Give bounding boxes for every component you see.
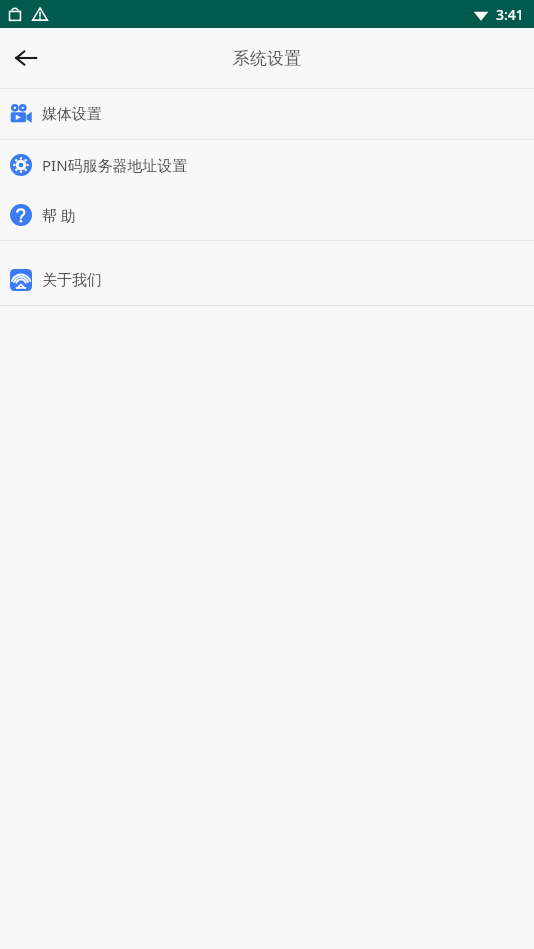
- staticText: 关于我们: [42, 271, 102, 290]
- staticText: PIN码服务器地址设置: [42, 155, 188, 175]
- button[interactable]: 关于我们: [0, 255, 534, 305]
- staticText: 3:41: [496, 5, 524, 24]
- button[interactable]: 媒体设置: [0, 89, 534, 139]
- button[interactable]: Back: [0, 32, 52, 84]
- staticText: 系统设置: [233, 48, 301, 69]
- staticText: 媒体设置: [42, 105, 102, 124]
- staticText: 帮 助: [42, 205, 76, 225]
- button[interactable]: 帮 助: [0, 190, 534, 240]
- button[interactable]: PIN码服务器地址设置: [0, 140, 534, 190]
